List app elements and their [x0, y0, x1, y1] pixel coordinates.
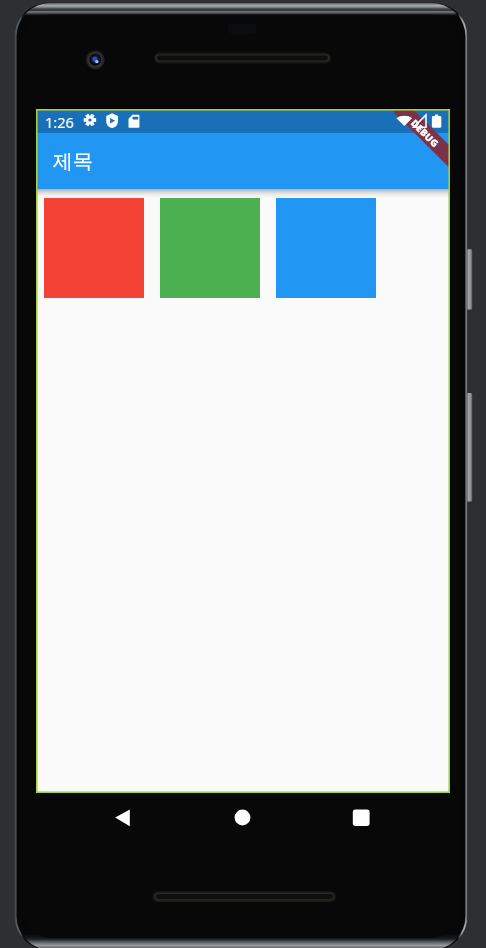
- staticText: DEBUG: [408, 117, 442, 151]
- staticText: 1:26: [45, 112, 74, 132]
- staticText: 제목: [53, 149, 93, 174]
- button[interactable]: 제목: [36, 133, 450, 189]
